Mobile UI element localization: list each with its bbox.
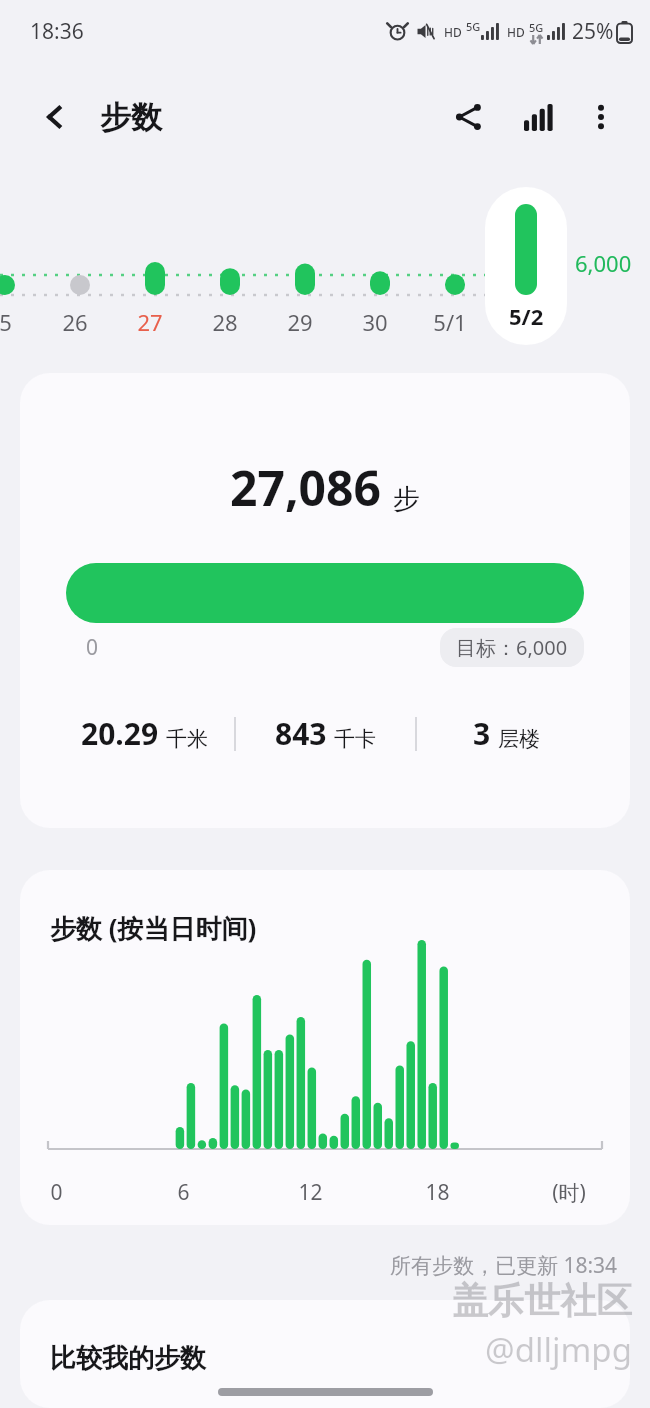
staticText: HD <box>444 24 462 40</box>
staticText: 5 <box>0 307 12 337</box>
staticText: HD <box>507 24 525 40</box>
button[interactable]: 29 <box>260 307 340 337</box>
staticText: 千米 <box>166 726 208 752</box>
staticText: 比较我的步数 <box>50 1342 206 1375</box>
button[interactable]: 3 <box>417 713 596 754</box>
staticText: 6,000 <box>575 248 632 278</box>
staticText: 27 <box>137 307 163 337</box>
staticText: 20.29 <box>81 713 159 754</box>
staticText: 18 <box>425 1178 450 1207</box>
staticText: 步 <box>393 482 420 516</box>
button[interactable]: 30 <box>335 307 415 337</box>
button[interactable]: 20.29 <box>54 713 234 754</box>
staticText: 6 <box>177 1178 190 1207</box>
staticText: 0 <box>50 1178 63 1207</box>
staticText: 所有步数，已更新 18:34 <box>390 1251 618 1280</box>
staticText: 盖乐世社区 <box>452 1278 632 1323</box>
staticText: 步数 (按当日时间) <box>50 910 257 946</box>
staticText: 25% <box>572 17 614 46</box>
staticText: 5G <box>529 20 544 35</box>
staticText: 千卡 <box>334 726 376 752</box>
button[interactable]: 5/2 <box>485 187 567 345</box>
button[interactable]: 27,086 <box>20 373 630 828</box>
staticText: @dlljmpg <box>485 1327 632 1372</box>
button[interactable]: More options <box>574 90 628 144</box>
button[interactable]: Back <box>34 96 76 138</box>
staticText: 12 <box>298 1178 323 1207</box>
button[interactable]: Statistics <box>510 90 564 144</box>
button[interactable]: Share <box>442 90 496 144</box>
staticText: (时) <box>552 1178 586 1207</box>
staticText: 29 <box>287 307 313 337</box>
staticText: 5G <box>466 19 481 34</box>
staticText: 目标：6,000 <box>456 634 568 661</box>
staticText: 28 <box>212 307 238 337</box>
button[interactable]: 26 <box>35 307 115 337</box>
button[interactable]: 5/1 <box>410 307 490 337</box>
staticText: 30 <box>362 307 388 337</box>
staticText: 843 <box>275 713 327 754</box>
button[interactable]: 5 <box>0 307 45 337</box>
button[interactable]: 27 <box>110 307 190 337</box>
staticText: 步数 <box>100 98 162 137</box>
staticText: 0 <box>86 633 99 662</box>
staticText: 18:36 <box>30 17 84 46</box>
staticText: 27,086 <box>230 455 381 520</box>
staticText: 26 <box>62 307 88 337</box>
staticText: 5/1 <box>433 307 467 337</box>
button[interactable]: 比较我的步数 <box>20 1300 630 1408</box>
staticText: 5/2 <box>509 301 544 331</box>
button[interactable]: 28 <box>185 307 265 337</box>
staticText: 层楼 <box>498 726 540 752</box>
button[interactable]: 步数 (按当日时间) <box>20 870 630 1225</box>
button[interactable]: 843 <box>236 713 415 754</box>
staticText: 3 <box>473 713 491 754</box>
